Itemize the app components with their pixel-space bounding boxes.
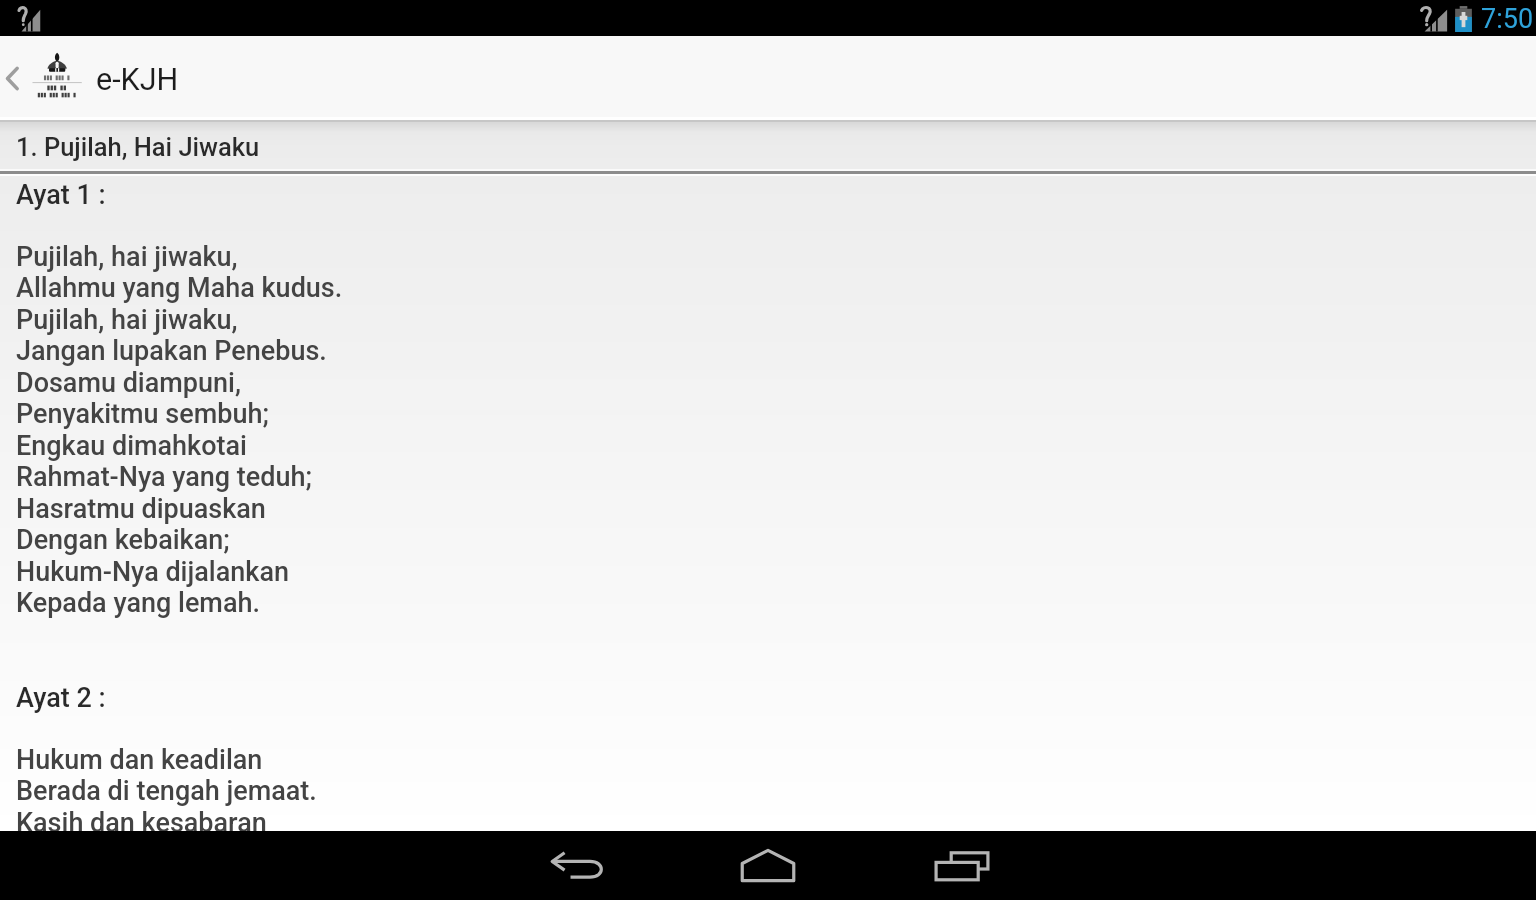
staticText: Kasih dan kesabaran (16, 807, 267, 839)
staticText: 1. Pujilah, Hai Jiwaku (16, 132, 260, 162)
staticText: Penyakitmu sembuh; (16, 398, 269, 430)
staticText: Hukum dan keadilan (16, 744, 263, 776)
staticText: 7:50 (1481, 3, 1534, 35)
staticText: Hasratmu dipuaskan (16, 493, 266, 525)
staticText: Hukum-Nya dijalankan (16, 556, 289, 588)
button[interactable]: Navigate up (0, 36, 88, 117)
staticText: Allahmu yang Maha kudus. (16, 272, 343, 304)
staticText: Ayat 1 : (16, 179, 106, 211)
staticText: Pujilah, hai jiwaku, (16, 304, 238, 336)
staticText: Engkau dimahkotai (16, 430, 247, 462)
button[interactable]: 1. Pujilah, Hai Jiwaku (0, 122, 1536, 169)
staticText: Pujilah, hai jiwaku, (16, 241, 238, 273)
staticText: Jangan lupakan Penebus. (16, 335, 327, 367)
staticText: Berada di tengah jemaat. (16, 775, 317, 807)
button[interactable]: Ayat 1 : (0, 176, 1536, 831)
staticText: Kepada yang lemah. (16, 587, 260, 619)
button[interactable]: Recent apps (897, 831, 1027, 900)
button[interactable]: Home (703, 831, 833, 900)
staticText: Rahmat-Nya yang teduh; (16, 461, 313, 493)
staticText: Ayat 2 : (16, 682, 106, 714)
button[interactable]: Back (512, 831, 642, 900)
staticText: Dosamu diampuni, (16, 367, 241, 399)
staticText: Dengan kebaikan; (16, 524, 230, 556)
staticText: e-KJH (96, 62, 179, 98)
